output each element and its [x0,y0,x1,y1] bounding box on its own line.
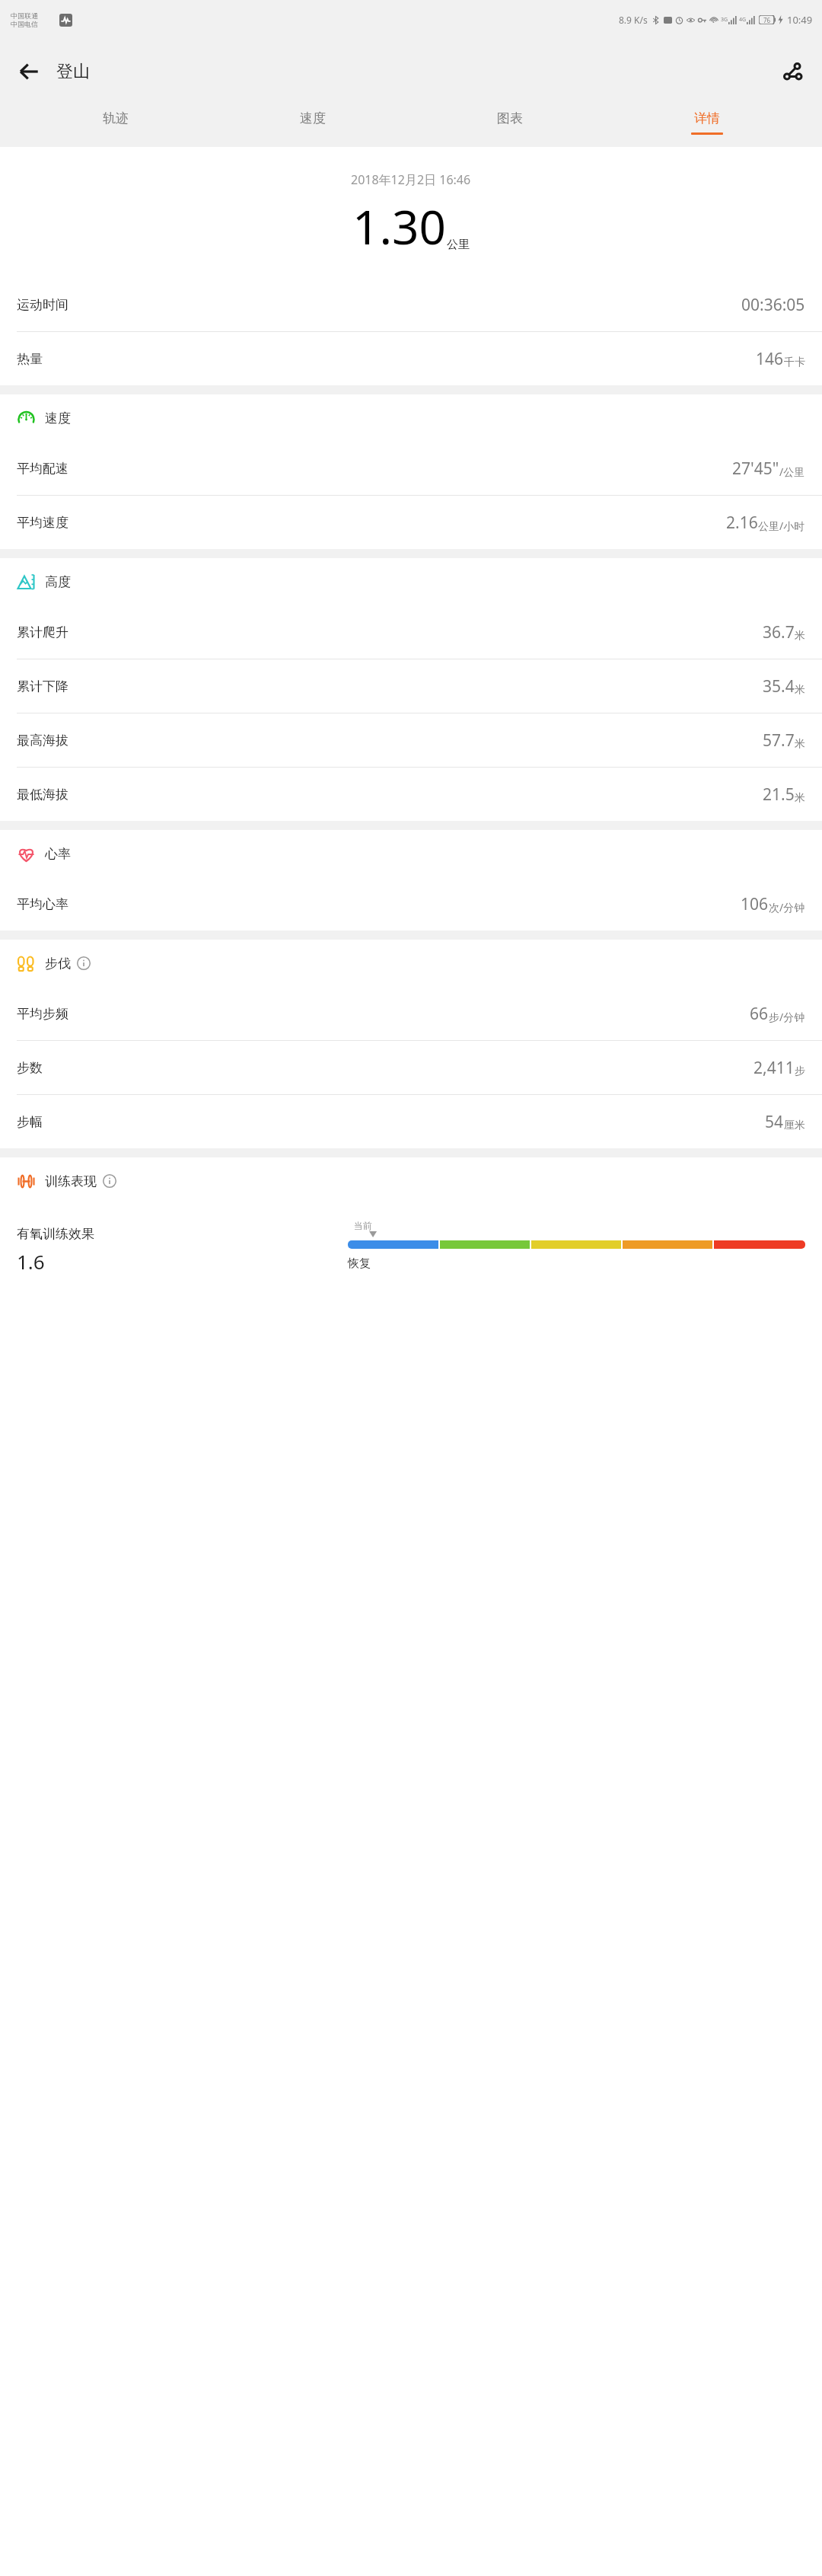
staticText: 平均心率 [17,896,68,912]
staticText: 当前 [354,1220,372,1231]
staticText: 平均配速 [17,461,68,477]
staticText: 热量 [17,351,43,367]
staticText: 2018年12月2日 16:46 [351,171,471,188]
button[interactable]: 累计下降 [0,659,822,713]
staticText: 米 [795,683,805,697]
staticText: 54 [765,1111,784,1133]
button[interactable]: 平均步频 [0,987,822,1041]
staticText: 8.9 K/s [619,14,648,26]
staticText: 35.4 [763,675,795,697]
button[interactable]: 最低海拔 [0,768,822,821]
staticText: 步 [795,1065,805,1078]
staticText: 步伐 [45,956,71,972]
staticText: 公里/小时 [758,519,805,533]
staticText: 步数 [17,1060,43,1076]
staticText: 米 [795,791,805,805]
button[interactable]: 步幅 [0,1095,822,1148]
staticText: /公里 [779,464,805,479]
button[interactable]: Info [77,956,91,970]
staticText: 106 [741,893,769,915]
button[interactable]: 热量 [0,332,822,385]
button[interactable]: 运动时间 [0,278,822,332]
button[interactable]: 最高海拔 [0,713,822,768]
staticText: 146 [756,348,784,370]
staticText: 2,411 [753,1057,795,1079]
button[interactable]: 平均速度 [0,496,822,549]
staticText: 累计爬升 [17,624,68,640]
button[interactable]: Info [103,1174,116,1188]
staticText: 最低海拔 [17,787,68,803]
staticText: 中国电信 [11,20,38,28]
staticText: 2.16 [726,512,758,534]
staticText: 详情 [694,110,720,126]
button[interactable]: Back [8,50,50,93]
staticText: 3G [721,16,728,24]
staticText: 10:49 [787,13,813,27]
staticText: 速度 [300,110,326,126]
staticText: 训练表现 [45,1173,97,1189]
button[interactable]: 速度 [214,104,411,147]
staticText: 平均速度 [17,515,68,531]
staticText: 图表 [497,110,523,126]
staticText: 00:36:05 [741,294,805,316]
staticText: 1.6 [17,1248,45,1275]
staticText: 平均步频 [17,1006,68,1022]
staticText: 米 [795,629,805,643]
button[interactable]: 平均配速 [0,442,822,496]
staticText: 运动时间 [17,297,68,313]
button[interactable]: 平均心率 [0,877,822,930]
staticText: 米 [795,737,805,751]
button[interactable]: 轨迹 [17,104,214,147]
staticText: 厘米 [784,1119,805,1132]
staticText: 66 [750,1003,769,1025]
staticText: 有氧训练效果 [17,1226,94,1242]
staticText: 1.30 [352,194,447,258]
staticText: 千卡 [784,356,805,369]
button[interactable]: 累计爬升 [0,605,822,659]
button[interactable]: 步数 [0,1041,822,1095]
staticText: 76 [763,16,771,24]
staticText: 公里 [447,238,470,252]
button[interactable]: Share [772,51,813,92]
staticText: 速度 [45,410,71,426]
staticText: 27'45" [732,458,779,480]
staticText: 最高海拔 [17,733,68,749]
button[interactable]: 图表 [411,104,608,147]
staticText: 中国联通 [11,11,38,20]
staticText: 累计下降 [17,678,68,694]
staticText: 心率 [45,846,71,862]
staticText: 36.7 [763,621,795,643]
staticText: 57.7 [763,729,795,752]
staticText: 登山 [56,61,90,82]
staticText: 4G [739,16,747,24]
staticText: 21.5 [763,784,795,806]
staticText: 恢复 [348,1256,371,1271]
staticText: 次/分钟 [769,900,805,915]
button[interactable]: 详情 [608,104,805,147]
staticText: 步/分钟 [769,1010,805,1024]
staticText: 轨迹 [103,110,129,126]
staticText: 步幅 [17,1114,43,1130]
staticText: 高度 [45,574,71,590]
